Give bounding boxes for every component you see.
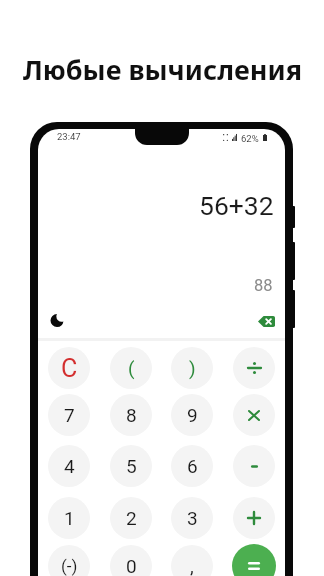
button[interactable]: 5	[110, 445, 152, 487]
button[interactable]: 3	[171, 497, 213, 539]
staticText: 7	[64, 404, 75, 426]
staticText: 1	[64, 507, 75, 529]
button[interactable]: 2	[110, 497, 152, 539]
staticText: 8	[126, 404, 137, 426]
staticText: Любые вычисления	[23, 51, 302, 88]
staticText: 56+32	[199, 190, 274, 221]
staticText: 0	[126, 555, 137, 576]
staticText: (-)	[61, 556, 78, 576]
button[interactable]: Close bracket	[171, 347, 213, 389]
button[interactable]: Backspace	[254, 309, 278, 333]
staticText: 2	[126, 507, 137, 529]
button[interactable]: 4	[48, 445, 90, 487]
button[interactable]: Minus	[233, 445, 275, 487]
button[interactable]: Negate	[48, 545, 90, 576]
button[interactable]: Open bracket	[110, 347, 152, 389]
button[interactable]: Decimal comma	[171, 545, 213, 576]
button[interactable]: Clear	[48, 347, 90, 389]
staticText: )	[189, 357, 196, 379]
button[interactable]: 7	[48, 394, 90, 436]
button[interactable]: Equals	[232, 544, 276, 576]
button[interactable]: 6	[171, 445, 213, 487]
staticText: 9	[187, 404, 198, 426]
staticText: 23:47	[57, 131, 81, 142]
button[interactable]: Dark mode	[45, 308, 69, 332]
staticText: 3	[187, 507, 198, 529]
button[interactable]: Multiply	[233, 394, 275, 436]
staticText: 6	[187, 455, 198, 477]
staticText: 88	[254, 276, 273, 295]
staticText: 5	[126, 455, 137, 477]
staticText: C	[61, 354, 78, 383]
staticText: 62%	[241, 133, 259, 142]
button[interactable]: 8	[110, 394, 152, 436]
button[interactable]: Plus	[233, 497, 275, 539]
button[interactable]: Divide	[233, 347, 275, 389]
staticText: 4	[64, 455, 75, 477]
staticText: (	[128, 357, 135, 379]
button[interactable]: 1	[48, 497, 90, 539]
staticText: ,	[190, 555, 194, 576]
button[interactable]: 9	[171, 394, 213, 436]
button[interactable]: 0	[110, 545, 152, 576]
